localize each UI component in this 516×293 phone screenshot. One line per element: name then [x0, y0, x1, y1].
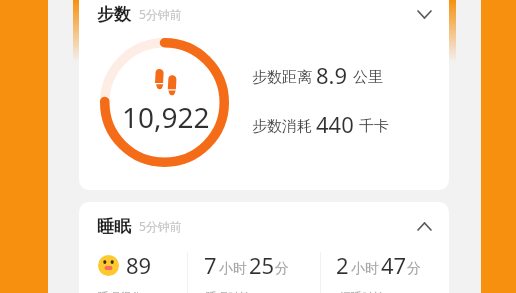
staticText: 89: [126, 250, 152, 280]
button[interactable]: 7: [188, 246, 320, 293]
staticText: 47: [381, 250, 407, 280]
staticText: 步数消耗: [252, 117, 312, 136]
staticText: 分: [407, 260, 421, 278]
staticText: 分: [275, 260, 289, 278]
button[interactable]: Collapse steps: [417, 10, 432, 19]
button[interactable]: Expand sleep: [417, 222, 432, 231]
staticText: 公里: [353, 68, 383, 87]
staticText: 深睡时长: [340, 290, 384, 293]
button[interactable]: [79, 38, 449, 180]
button[interactable]: 89: [79, 246, 187, 293]
staticText: 5分钟前: [139, 6, 182, 22]
staticText: 10,922: [122, 98, 210, 136]
staticText: 440: [316, 109, 354, 139]
staticText: 小时: [219, 260, 247, 278]
button[interactable]: 2: [321, 246, 449, 293]
staticText: 7: [204, 250, 217, 280]
button[interactable]: 睡眠: [79, 202, 449, 250]
staticText: 2: [336, 250, 349, 280]
staticText: 睡眠: [97, 216, 131, 237]
staticText: 25: [249, 250, 275, 280]
staticText: 5分钟前: [139, 218, 182, 234]
staticText: 小时: [351, 260, 379, 278]
staticText: 步数: [97, 4, 131, 25]
button[interactable]: 步数: [79, 0, 449, 38]
staticText: 8.9: [316, 60, 348, 90]
staticText: 睡眠得分: [98, 290, 142, 293]
staticText: 千卡: [359, 117, 389, 136]
staticText: 睡眠时长: [206, 290, 250, 293]
staticText: 步数距离: [252, 68, 312, 87]
